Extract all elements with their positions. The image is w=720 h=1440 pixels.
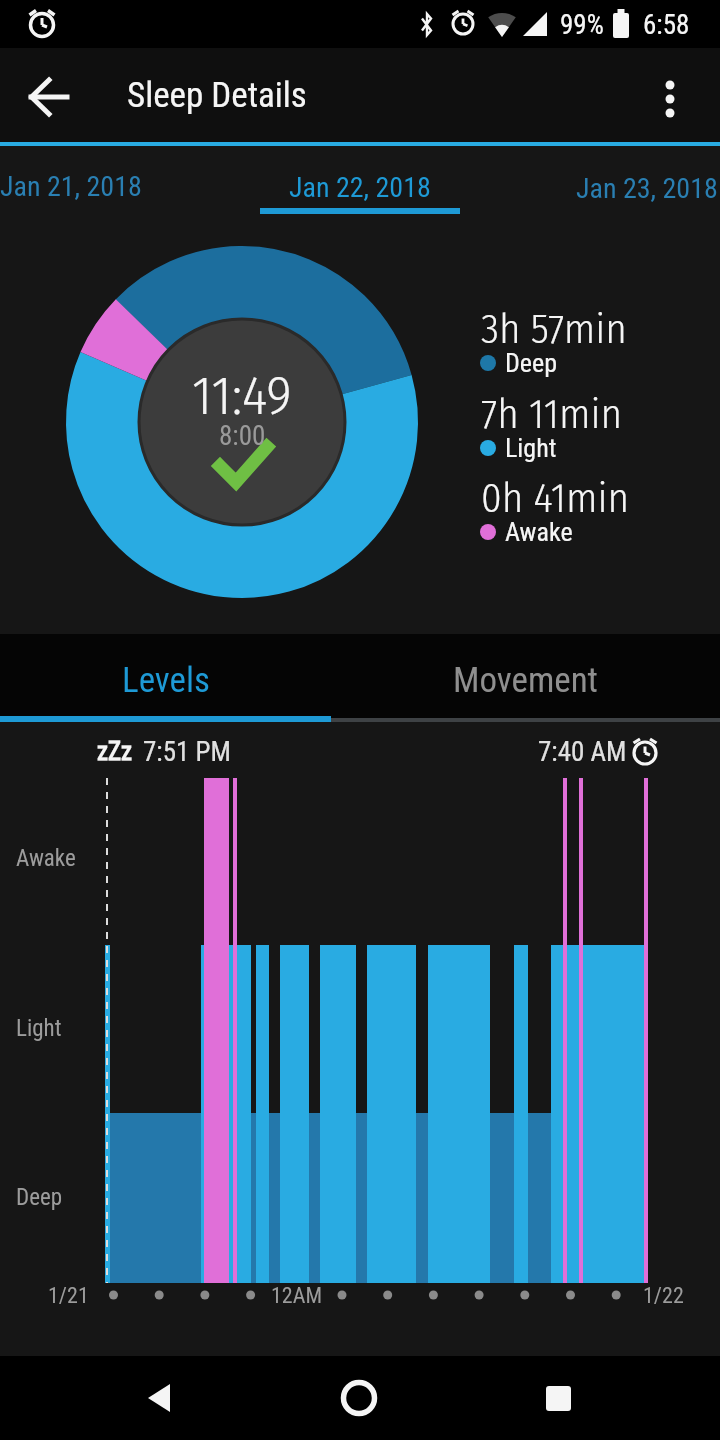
- staticText: 1/21: [48, 1283, 89, 1309]
- staticText: Light: [505, 433, 557, 463]
- staticText: 1/22: [643, 1283, 684, 1309]
- staticText: Movement: [453, 660, 598, 701]
- staticText: Levels: [122, 660, 210, 701]
- staticText: Deep: [16, 1184, 63, 1211]
- button[interactable]: Movement: [331, 640, 720, 720]
- staticText: 7:40 AM: [538, 736, 627, 768]
- staticText: 0h 41min: [481, 474, 630, 523]
- button[interactable]: [640, 56, 700, 134]
- staticText: Deep: [505, 348, 558, 378]
- staticText: 7h 11min: [481, 390, 623, 439]
- staticText: Awake: [505, 517, 573, 547]
- staticText: 7:51 PM: [143, 736, 231, 768]
- staticText: Jan 21, 2018: [0, 170, 142, 203]
- button[interactable]: Levels: [0, 640, 331, 720]
- button[interactable]: [526, 1366, 590, 1430]
- button[interactable]: [128, 1366, 192, 1430]
- staticText: zZz: [97, 737, 133, 766]
- button[interactable]: [18, 66, 80, 128]
- staticText: Sleep Details: [127, 75, 307, 116]
- button[interactable]: [327, 1366, 391, 1430]
- staticText: 3h 57min: [481, 305, 627, 354]
- staticText: Light: [16, 1015, 62, 1042]
- staticText: 6:58: [643, 9, 690, 41]
- staticText: Jan 23, 2018: [576, 172, 718, 205]
- staticText: Awake: [16, 845, 76, 872]
- button[interactable]: Jan 21, 2018: [0, 158, 150, 218]
- staticText: 99%: [560, 9, 604, 41]
- button[interactable]: Jan 23, 2018: [570, 158, 720, 218]
- staticText: Jan 22, 2018: [289, 171, 431, 204]
- staticText: 11:49: [192, 364, 292, 428]
- button[interactable]: Jan 22, 2018: [260, 152, 460, 222]
- staticText: 12AM: [271, 1283, 323, 1309]
- staticText: 8:00: [219, 420, 266, 452]
